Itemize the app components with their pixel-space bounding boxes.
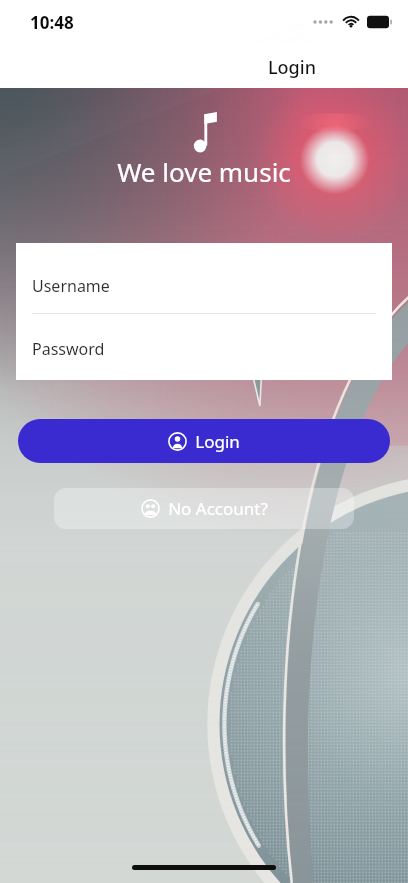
- staticText: Login: [195, 430, 240, 453]
- other: People: [141, 499, 160, 518]
- staticText: 10:48: [30, 11, 74, 34]
- staticText: Username: [32, 275, 110, 297]
- button[interactable]: Account: [18, 419, 390, 463]
- button[interactable]: People: [54, 488, 354, 529]
- staticText: Login: [268, 55, 316, 80]
- staticText: No Account?: [168, 497, 268, 520]
- staticText: Password: [32, 338, 105, 360]
- staticText: We love music: [117, 154, 291, 189]
- button[interactable]: Username: [16, 243, 392, 313]
- button[interactable]: Password: [16, 314, 392, 380]
- other: Account: [168, 432, 187, 451]
